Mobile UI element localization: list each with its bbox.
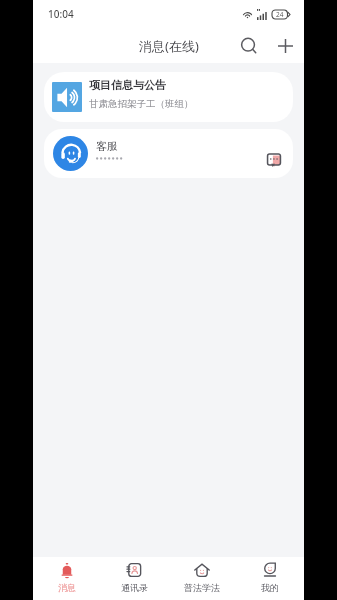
staticText: 通讯录 <box>121 582 148 593</box>
button[interactable]: Search <box>236 33 262 59</box>
button[interactable]: 消息 <box>33 562 100 600</box>
staticText: 我的 <box>261 582 279 593</box>
staticText: 项目信息与公告 <box>89 78 166 92</box>
staticText: 消息(在线) <box>139 37 199 55</box>
staticText: 普法学法 <box>184 582 220 593</box>
button[interactable]: 项目信息与公告 <box>44 72 293 122</box>
staticText: 客服 <box>96 139 118 153</box>
button[interactable]: 普法学法 <box>168 562 236 600</box>
button[interactable]: Add <box>272 33 298 59</box>
staticText: 24 <box>276 10 284 19</box>
button[interactable]: 客服 <box>44 129 293 178</box>
button[interactable]: 通讯录 <box>100 562 168 600</box>
button[interactable]: 我的 <box>236 562 304 600</box>
staticText: 消息 <box>58 582 76 593</box>
staticText: 甘肃急招架子工（班组） <box>89 98 194 110</box>
staticText: 10:04 <box>48 7 74 21</box>
